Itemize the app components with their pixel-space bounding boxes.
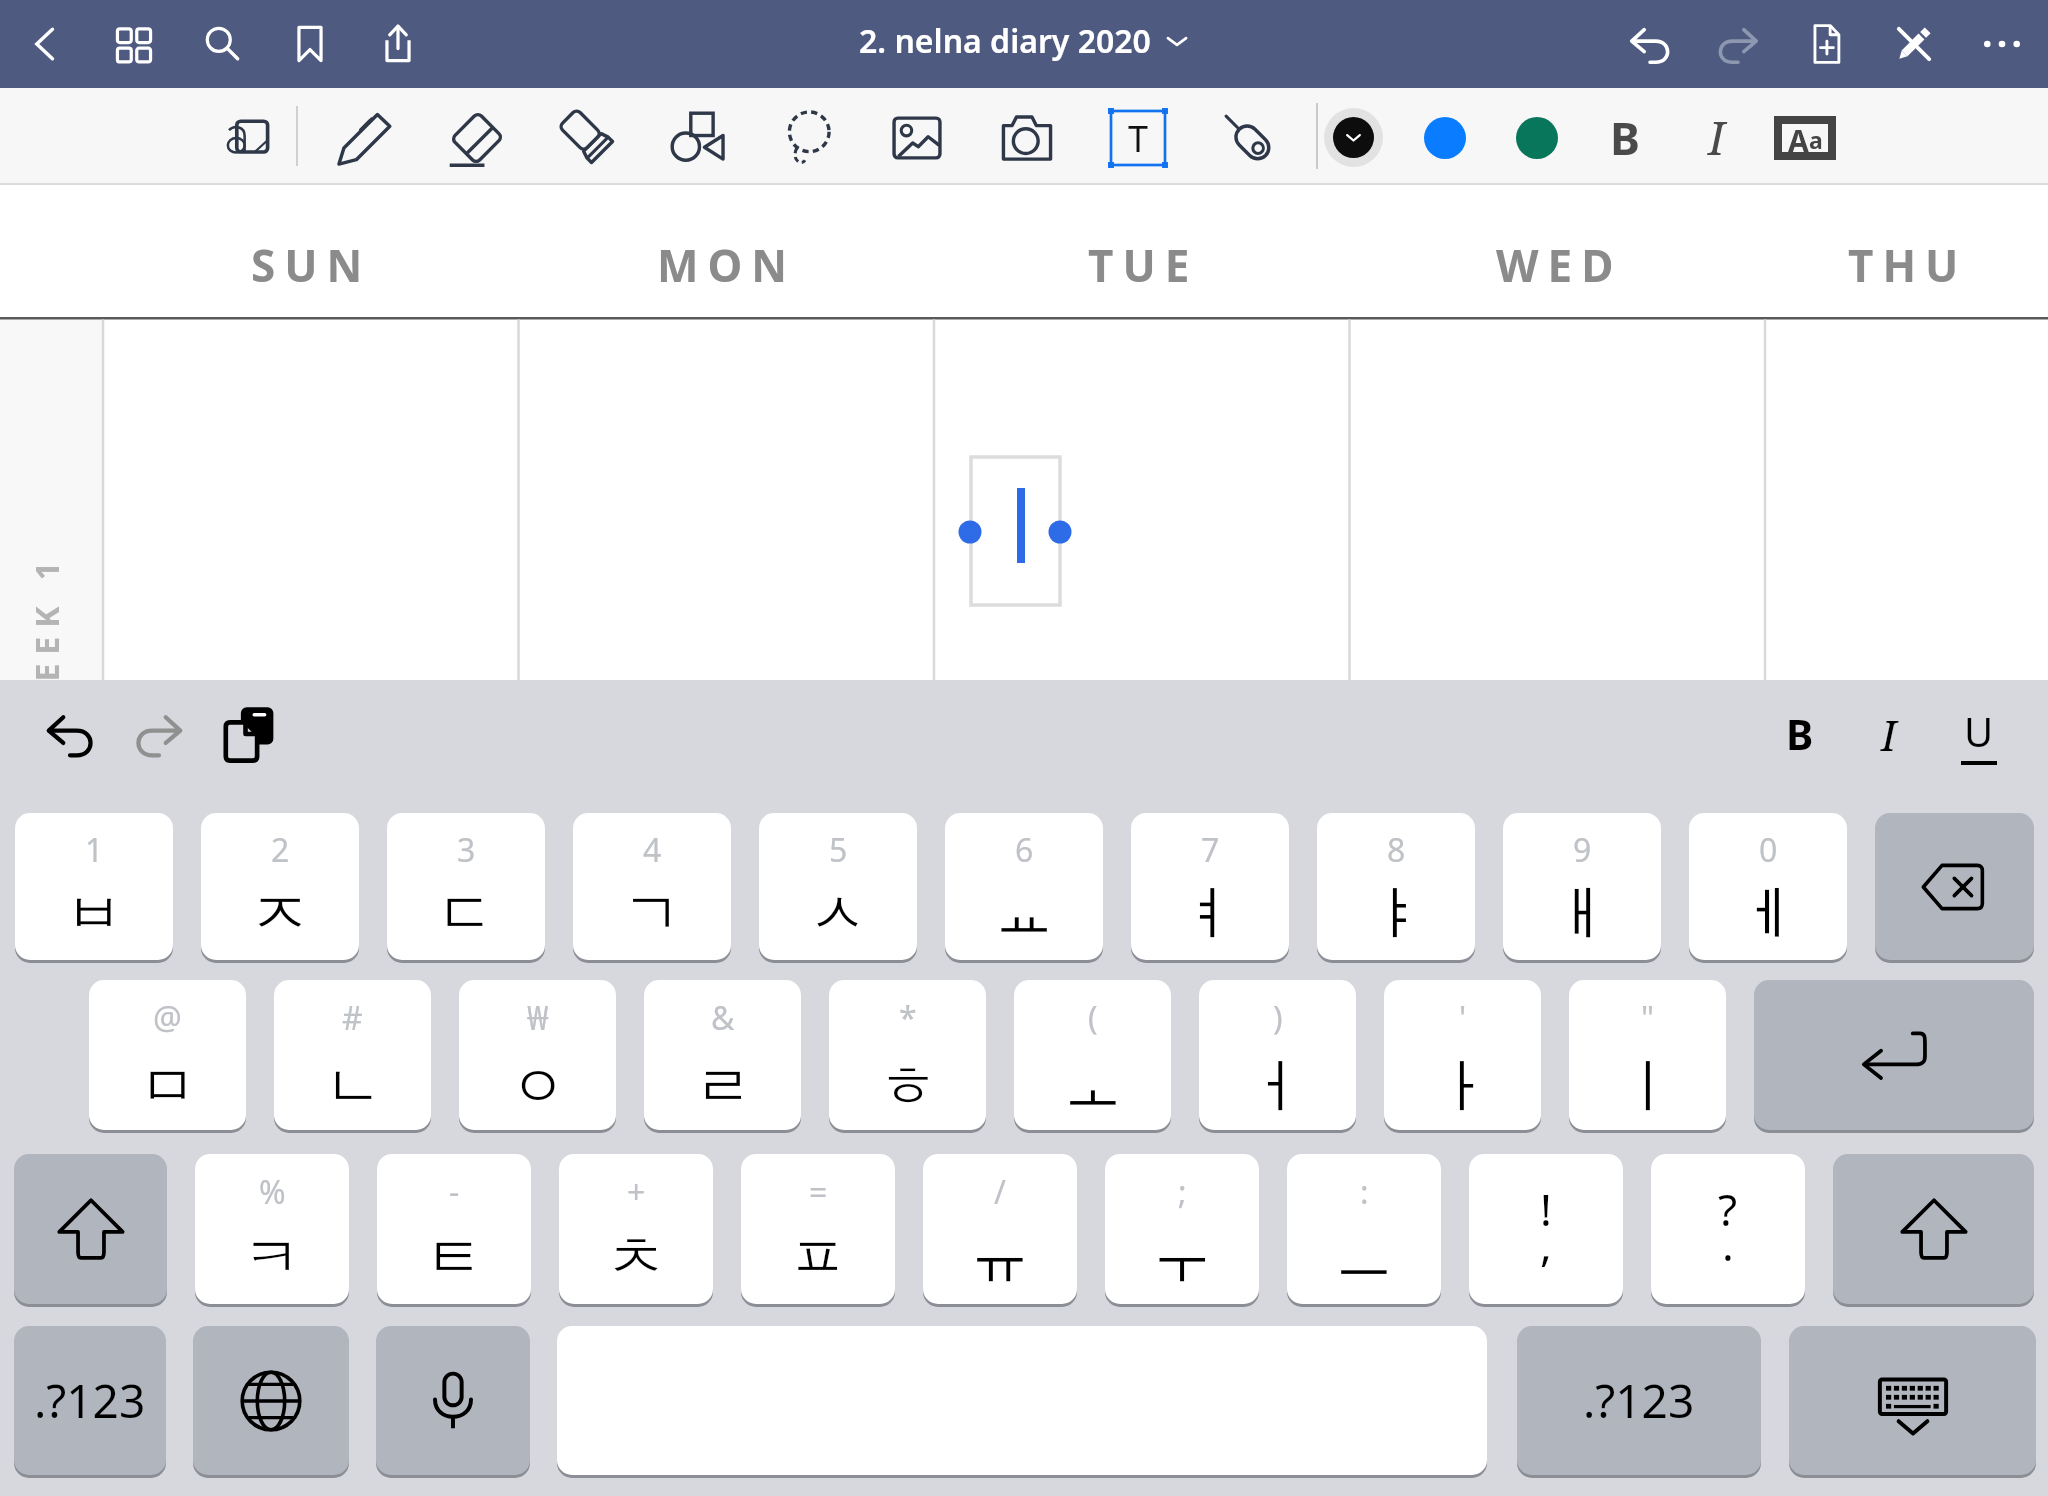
button[interactable]: " xyxy=(1569,980,1726,1130)
staticText: 6 xyxy=(1015,828,1034,872)
button[interactable]: ₩ xyxy=(459,980,616,1130)
button[interactable]: : xyxy=(1287,1154,1441,1304)
staticText: B xyxy=(1786,706,1814,762)
button[interactable]: 5 xyxy=(759,813,917,960)
staticText: 8 xyxy=(1387,828,1406,872)
button[interactable]: 1 xyxy=(15,813,173,960)
button[interactable]: 7 xyxy=(1131,813,1289,960)
staticText: @ xyxy=(153,996,182,1040)
button[interactable]: Shift xyxy=(14,1154,167,1304)
staticText: ) xyxy=(1273,996,1283,1040)
button[interactable]: 8 xyxy=(1317,813,1475,960)
staticText: a xyxy=(1809,124,1823,155)
button[interactable]: Pen tool xyxy=(1870,0,1958,88)
staticText: ㅔ xyxy=(1739,877,1797,950)
button[interactable]: Shapes xyxy=(647,88,747,183)
button[interactable]: Text style xyxy=(1765,88,1845,183)
staticText: ㅍ xyxy=(789,1221,847,1294)
staticText: * xyxy=(899,996,917,1040)
button[interactable]: 4 xyxy=(573,813,731,960)
button[interactable]: @ xyxy=(89,980,246,1130)
button[interactable]: & xyxy=(644,980,801,1130)
button[interactable]: ; xyxy=(1105,1154,1259,1304)
staticText: I xyxy=(1708,106,1725,169)
button[interactable]: .?123 xyxy=(1517,1326,1761,1475)
button[interactable]: 3 xyxy=(387,813,545,960)
button[interactable]: Hide keyboard xyxy=(1789,1326,2036,1475)
staticText: ㅁ xyxy=(139,1050,197,1123)
button[interactable]: * xyxy=(829,980,986,1130)
button[interactable]: Redo xyxy=(1694,0,1782,88)
button[interactable]: 2 xyxy=(201,813,359,960)
button[interactable]: Bookmark xyxy=(266,0,354,88)
button[interactable]: ' xyxy=(1384,980,1541,1130)
staticText: ( xyxy=(1088,996,1098,1040)
button[interactable]: Bold xyxy=(1590,88,1660,183)
button[interactable]: Italic xyxy=(1681,88,1751,183)
button[interactable]: Green colour xyxy=(1505,88,1569,183)
staticText: ㅗ xyxy=(1064,1050,1122,1123)
button[interactable]: Convert to text xyxy=(200,88,296,183)
staticText: 9 xyxy=(1573,828,1592,872)
staticText: 2 xyxy=(271,828,290,872)
staticText: ㄷ xyxy=(437,877,495,950)
button[interactable]: Add page xyxy=(1782,0,1870,88)
button[interactable]: ? xyxy=(1651,1154,1805,1304)
button[interactable]: ! xyxy=(1469,1154,1623,1304)
button[interactable]: Grid view xyxy=(90,0,178,88)
staticText: ㅛ xyxy=(995,877,1053,950)
staticText: . xyxy=(1722,1214,1734,1274)
button[interactable]: .?123 xyxy=(14,1326,166,1475)
button[interactable]: Italic xyxy=(1849,680,1929,788)
button[interactable]: Undo xyxy=(1606,0,1694,88)
staticText: 0 xyxy=(1759,828,1778,872)
staticText: ㄹ xyxy=(694,1050,752,1123)
button[interactable]: ( xyxy=(1014,980,1171,1130)
button[interactable]: Back xyxy=(2,0,90,88)
button[interactable]: Lasso xyxy=(758,88,858,183)
button[interactable]: Image xyxy=(867,88,967,183)
staticText: ㅎ xyxy=(879,1050,937,1123)
button[interactable]: Text box xyxy=(1088,88,1188,183)
button[interactable]: % xyxy=(195,1154,349,1304)
button[interactable]: = xyxy=(741,1154,895,1304)
button[interactable]: Bold xyxy=(1760,680,1840,788)
button[interactable]: Shift xyxy=(1833,1154,2034,1304)
staticText: WEEK 1 xyxy=(24,552,68,721)
button[interactable]: Black colour xyxy=(1317,88,1389,183)
staticText: : xyxy=(1360,1170,1369,1214)
button[interactable]: Share xyxy=(354,0,442,88)
button[interactable]: Redo xyxy=(119,680,199,788)
staticText: MON xyxy=(657,235,797,295)
button[interactable]: More xyxy=(1958,0,2046,88)
button[interactable]: Language xyxy=(193,1326,349,1475)
button[interactable]: 9 xyxy=(1503,813,1661,960)
staticText: ㅏ xyxy=(1434,1050,1492,1123)
button[interactable]: Camera xyxy=(977,88,1077,183)
button[interactable]: / xyxy=(923,1154,1077,1304)
button[interactable]: Backspace xyxy=(1875,813,2034,960)
staticText: 3 xyxy=(457,828,476,872)
button[interactable]: Paste xyxy=(209,680,289,788)
button[interactable]: 0 xyxy=(1689,813,1847,960)
button[interactable]: + xyxy=(559,1154,713,1304)
button[interactable]: Eraser xyxy=(427,88,527,183)
button[interactable]: Undo xyxy=(30,680,110,788)
button[interactable]: Voice input xyxy=(376,1326,530,1475)
button[interactable]: 6 xyxy=(945,813,1103,960)
staticText: / xyxy=(994,1170,1006,1214)
button[interactable]: Laser pointer xyxy=(1198,88,1298,183)
button[interactable]: Blue colour xyxy=(1413,88,1477,183)
button[interactable]: Search xyxy=(178,0,266,88)
staticText: THU xyxy=(1848,235,1968,295)
button[interactable]: - xyxy=(377,1154,531,1304)
button[interactable]: Highlighter xyxy=(538,88,638,183)
staticText: U xyxy=(1964,704,1994,758)
staticText: % xyxy=(259,1170,286,1214)
button[interactable]: # xyxy=(274,980,431,1130)
button[interactable]: Underline xyxy=(1939,680,2019,788)
button[interactable]: ) xyxy=(1199,980,1356,1130)
button[interactable]: Enter xyxy=(1754,980,2034,1130)
button[interactable]: Pen xyxy=(315,88,415,183)
